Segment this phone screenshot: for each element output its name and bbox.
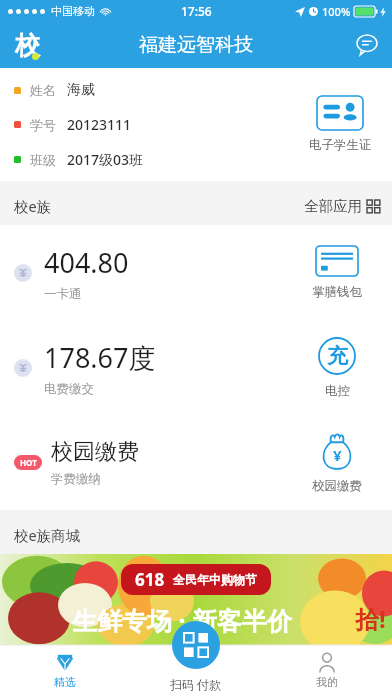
staticText: 校e族商城 [14, 525, 81, 545]
staticText: 校 [15, 30, 40, 61]
button[interactable]: 扫码 付款 [130, 645, 261, 696]
staticText: 扫码 付款 [170, 676, 222, 692]
staticText: 2017级03班 [67, 150, 144, 169]
button[interactable]: 178.67度 [0, 320, 392, 415]
staticText: 电控 [325, 383, 350, 399]
staticText: 班级 [30, 152, 56, 168]
staticText: 一卡通 [44, 286, 82, 302]
staticText: 福建远智科技 [139, 33, 253, 57]
staticText: 20123111 [67, 115, 132, 134]
staticText: 校园缴费 [312, 478, 362, 494]
staticText: 生鲜专场 · 新客半价 [72, 603, 293, 637]
staticText: 拾! [355, 602, 386, 635]
staticText: 学费缴纳 [51, 471, 101, 487]
staticText: 618 [135, 568, 165, 591]
staticText: 海威 [67, 81, 95, 99]
button[interactable]: HOT [0, 415, 392, 510]
staticText: 中国移动 [51, 4, 95, 18]
staticText: ¥ [333, 445, 342, 465]
staticText: 电费缴交 [44, 381, 94, 397]
staticText: 学号 [30, 117, 56, 133]
staticText: 掌膳钱包 [312, 284, 362, 300]
button[interactable]: 618 [0, 554, 392, 645]
staticText: 全民年中购物节 [173, 572, 257, 587]
button[interactable]: 电子学生证 [295, 96, 385, 153]
staticText: 校园缴费 [51, 438, 139, 466]
button[interactable]: Messages [350, 28, 384, 62]
staticText: 100% [322, 4, 351, 19]
staticText: 17:56 [181, 3, 212, 19]
staticText: 178.67度 [44, 339, 156, 376]
staticText: 电子学生证 [309, 137, 372, 153]
button[interactable]: Logo [10, 28, 44, 62]
button[interactable]: 精选 [0, 645, 130, 696]
staticText: 精选 [54, 675, 76, 689]
button[interactable]: 我的 [261, 645, 392, 696]
staticText: 我的 [316, 675, 338, 689]
staticText: 充 [327, 343, 348, 369]
staticText: HOT [20, 457, 37, 468]
staticText: 全部应用 [304, 197, 362, 215]
staticText: 姓名 [30, 82, 56, 98]
button[interactable]: 404.80 [0, 225, 392, 320]
button[interactable]: 全部应用 [304, 197, 380, 215]
staticText: 校e族 [14, 196, 52, 216]
staticText: 404.80 [44, 244, 129, 281]
button[interactable]: 扫码 付款 [172, 621, 220, 669]
